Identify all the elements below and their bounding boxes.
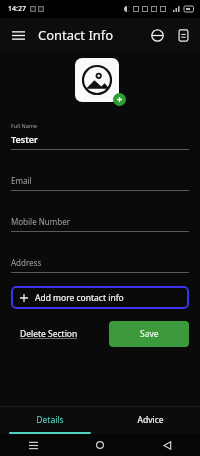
staticText: Address xyxy=(11,257,42,268)
button[interactable]: Email xyxy=(11,166,189,191)
staticText: Advice xyxy=(137,414,164,426)
button[interactable]: Details xyxy=(0,407,100,432)
button[interactable]: Delete Section xyxy=(20,328,78,340)
staticText: Details xyxy=(36,414,64,426)
button[interactable]: Menu xyxy=(5,22,31,48)
button[interactable]: Profile photo xyxy=(75,58,119,102)
button[interactable]: Recents xyxy=(24,436,42,454)
button[interactable]: Mobile Number xyxy=(11,207,189,232)
staticText: Delete Section xyxy=(20,328,78,340)
staticText: Add more contact info xyxy=(35,292,124,304)
staticText: Contact Info xyxy=(38,26,114,44)
button[interactable]: Add more contact info xyxy=(11,286,189,309)
staticText: Mobile Number xyxy=(11,216,70,227)
button[interactable]: Home xyxy=(91,436,109,454)
staticText: Save xyxy=(140,328,159,340)
staticText: Email xyxy=(11,175,32,186)
staticText: Tester xyxy=(11,133,39,145)
button[interactable]: Save xyxy=(109,321,189,347)
button[interactable]: Address xyxy=(11,248,189,273)
button[interactable]: Back xyxy=(158,436,176,454)
button[interactable]: Contrast xyxy=(144,22,170,48)
button[interactable]: Notes xyxy=(170,22,196,48)
staticText: 14:27 xyxy=(8,4,26,14)
staticText: Full Name xyxy=(11,122,38,129)
button[interactable]: Add photo xyxy=(113,93,126,106)
button[interactable]: Advice xyxy=(100,407,200,432)
